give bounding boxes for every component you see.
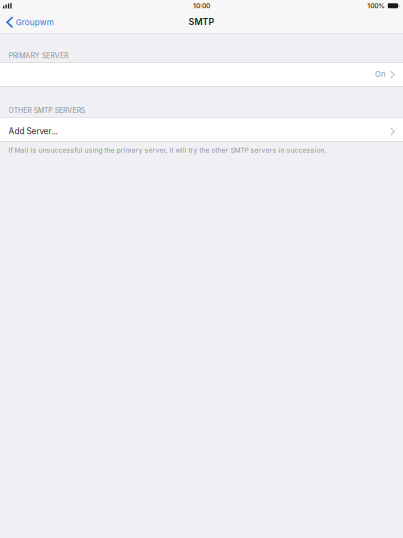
button[interactable]: Groupwm: [0, 12, 61, 33]
staticText: PRIMARY SERVER: [9, 51, 68, 60]
staticText: SMTP: [188, 16, 214, 27]
staticText: Add Server...: [9, 126, 58, 136]
staticText: OTHER SMTP SERVERS: [9, 106, 85, 115]
staticText: 10:00: [193, 2, 210, 10]
staticText: 100%: [367, 2, 385, 10]
staticText: On: [375, 69, 385, 79]
staticText: If Mail is unsuccessful using the primar…: [9, 146, 327, 154]
button[interactable]: Add Server...: [0, 118, 403, 141]
staticText: Groupwm: [16, 17, 54, 27]
button[interactable]: On: [0, 63, 403, 86]
